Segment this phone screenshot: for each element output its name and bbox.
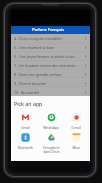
button[interactable]: Bluetooth [14, 133, 36, 150]
button[interactable]: 9 - Chez le boucher [11, 79, 90, 88]
button[interactable]: Mixa [65, 133, 87, 150]
staticText: 10 - Au marché [14, 90, 84, 95]
staticText: Mixa [72, 146, 80, 150]
staticText: WhatsApp [43, 126, 59, 130]
staticText: Parlons Français [32, 27, 64, 33]
button[interactable]: 5 - Une chambre à louer [11, 43, 90, 52]
button[interactable]: Gmail [14, 113, 36, 130]
staticText: 9 - Chez le boucher [14, 81, 84, 86]
staticText: Pick an app [14, 100, 43, 107]
button[interactable]: 10 - Au marché [11, 88, 90, 96]
staticText: 6 - Une jeune femme se plaint à son ... [14, 54, 84, 59]
staticText: E-mail [71, 126, 81, 130]
staticText: Enregistrer dans Drive [43, 146, 60, 154]
staticText: Gmail [21, 126, 30, 130]
staticText: 5 - Une chambre à louer [14, 45, 84, 50]
staticText: 8 - Dans une grande surface [14, 72, 84, 77]
button[interactable]: 4 - Chez un agent immobilier [11, 34, 90, 43]
staticText: Bluetooth [18, 146, 33, 150]
button[interactable]: Enregistrer dans Drive [40, 133, 62, 154]
staticText: 7 - Un locataire donne des instructio... [14, 63, 84, 68]
button[interactable]: 6 - Une jeune femme se plaint à son ... [11, 52, 90, 61]
button[interactable]: E-mail [65, 113, 87, 130]
button[interactable]: 8 - Dans une grande surface [11, 70, 90, 79]
button[interactable]: WhatsApp [40, 113, 62, 130]
button[interactable]: 7 - Un locataire donne des instructio... [11, 61, 90, 70]
button[interactable]: Parlons Français [11, 26, 90, 34]
staticText: 4 - Chez un agent immobilier [14, 36, 84, 41]
